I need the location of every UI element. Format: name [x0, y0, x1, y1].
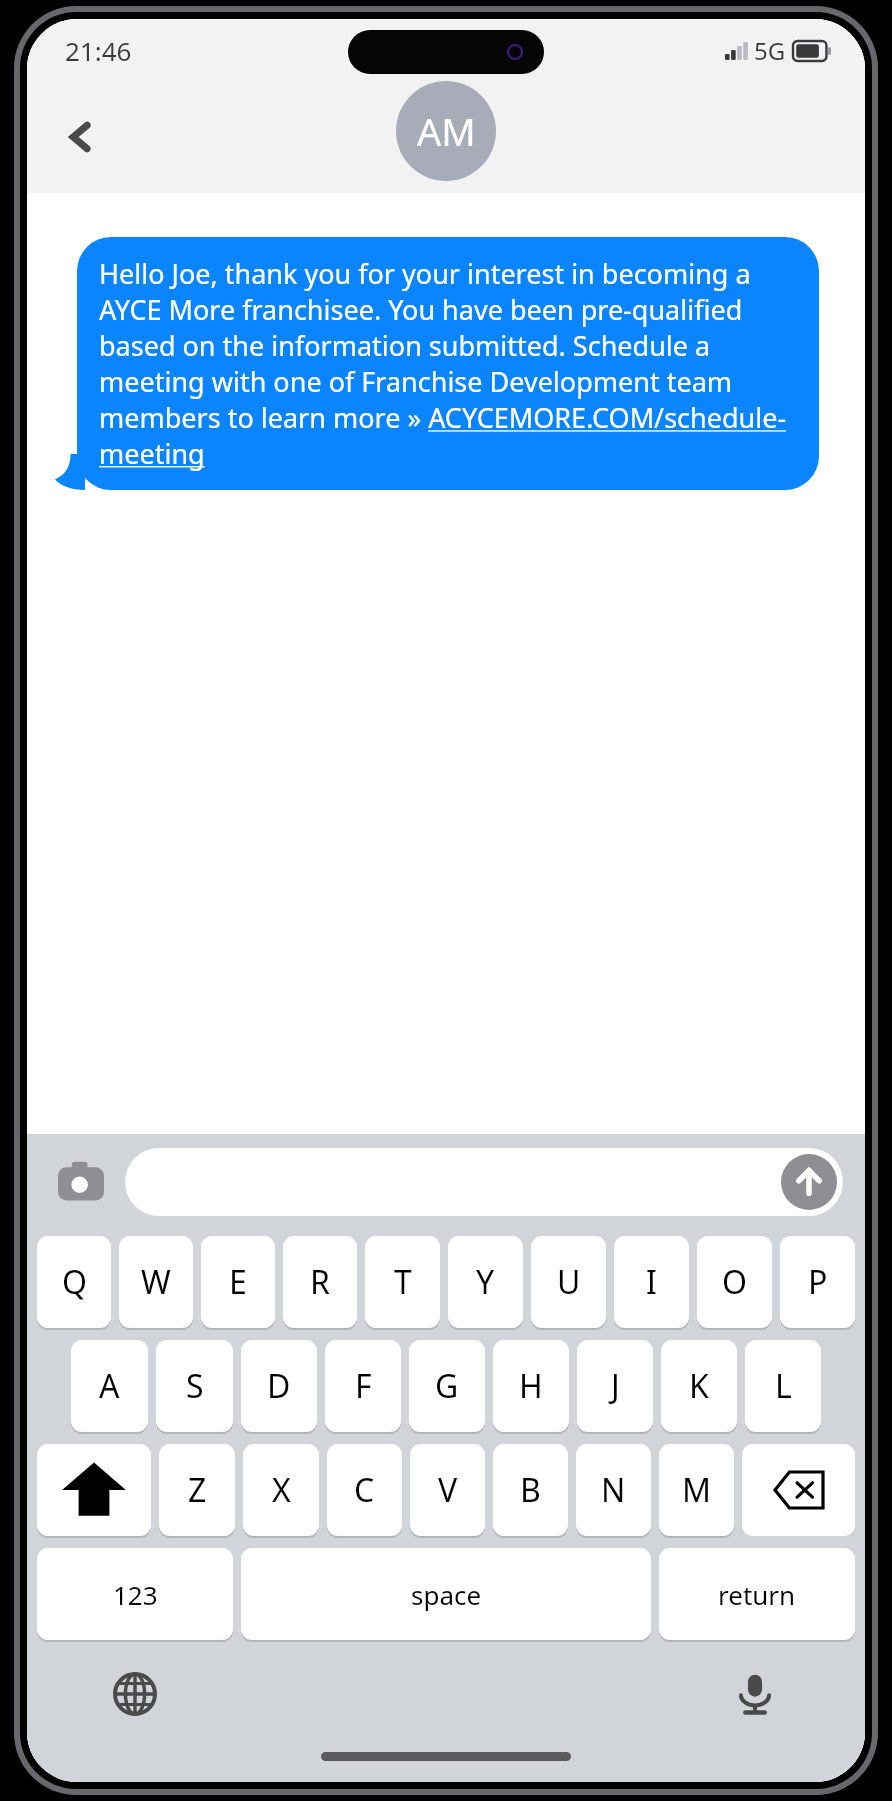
button[interactable]: return [659, 1548, 855, 1640]
staticText: J [611, 1364, 620, 1408]
button[interactable]: S [156, 1340, 233, 1432]
staticText: E [229, 1260, 247, 1304]
button[interactable]: R [283, 1236, 357, 1328]
staticText: Y [476, 1260, 495, 1304]
button[interactable]: G [409, 1340, 485, 1432]
staticText: 123 [113, 1577, 158, 1612]
button[interactable]: Send [125, 1148, 843, 1216]
staticText: C [354, 1468, 375, 1512]
staticText: X [272, 1468, 291, 1512]
button[interactable]: Hello Joe, thank you for your interest i… [77, 237, 819, 490]
button[interactable]: Y [448, 1236, 523, 1328]
button[interactable]: O [697, 1236, 772, 1328]
button[interactable]: X [243, 1444, 319, 1536]
staticText: T [394, 1260, 412, 1304]
button[interactable]: V [410, 1444, 485, 1536]
button[interactable]: Camera [49, 1150, 113, 1214]
button[interactable]: U [531, 1236, 606, 1328]
staticText: B [520, 1468, 541, 1512]
button[interactable]: Send [781, 1154, 837, 1210]
staticText: space [411, 1577, 482, 1612]
button[interactable]: Z [159, 1444, 235, 1536]
staticText: W [141, 1260, 171, 1304]
staticText: 5G [754, 34, 786, 67]
button[interactable]: I [614, 1236, 689, 1328]
staticText: S [186, 1364, 204, 1408]
staticText: M [682, 1468, 712, 1512]
button[interactable]: Back [53, 109, 109, 165]
button[interactable]: space [241, 1548, 651, 1640]
staticText: Hello Joe, thank you for your interest i… [99, 255, 797, 472]
button[interactable]: AM [396, 81, 496, 181]
staticText: F [355, 1364, 372, 1408]
staticText: I [646, 1260, 657, 1304]
staticText: P [808, 1260, 828, 1304]
button[interactable]: 123 [37, 1548, 233, 1640]
staticText: A [99, 1364, 120, 1408]
button[interactable]: L [745, 1340, 821, 1432]
button[interactable]: Backspace [742, 1444, 855, 1536]
button[interactable]: N [576, 1444, 651, 1536]
staticText: N [601, 1468, 626, 1512]
button[interactable]: B [493, 1444, 568, 1536]
staticText: R [310, 1260, 330, 1304]
staticText: O [722, 1260, 747, 1304]
button[interactable]: H [493, 1340, 569, 1432]
button[interactable]: Change keyboard [105, 1664, 165, 1724]
button[interactable]: F [325, 1340, 401, 1432]
button[interactable]: E [201, 1236, 275, 1328]
button[interactable]: T [365, 1236, 440, 1328]
button[interactable]: P [780, 1236, 855, 1328]
staticText: 21:46 [65, 33, 132, 68]
button[interactable]: Q [37, 1236, 111, 1328]
staticText: K [689, 1364, 709, 1408]
staticText: D [267, 1364, 291, 1408]
staticText: Z [188, 1468, 207, 1512]
staticText: return [718, 1577, 796, 1612]
button[interactable]: J [577, 1340, 653, 1432]
staticText: U [557, 1260, 581, 1304]
button[interactable]: D [241, 1340, 317, 1432]
staticText: Q [62, 1260, 87, 1304]
staticText: V [438, 1468, 458, 1512]
staticText: G [435, 1364, 459, 1408]
staticText: AM [417, 105, 476, 157]
button[interactable]: C [327, 1444, 402, 1536]
staticText: L [775, 1364, 792, 1408]
button[interactable]: Dictate [725, 1664, 785, 1724]
staticText: H [519, 1364, 543, 1408]
button[interactable]: Shift [37, 1444, 151, 1536]
button[interactable]: M [659, 1444, 734, 1536]
button[interactable]: K [661, 1340, 737, 1432]
button[interactable]: A [71, 1340, 148, 1432]
button[interactable]: W [119, 1236, 193, 1328]
